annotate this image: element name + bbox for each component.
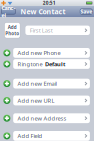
staticText: Add new URL: [18, 97, 55, 104]
staticText: Default: [45, 60, 65, 68]
staticText: Save: [80, 8, 92, 15]
button[interactable]: Cancel: [1, 9, 15, 14]
staticText: Add new Phone: [18, 49, 61, 57]
button[interactable]: Ringtone: [13, 59, 90, 69]
staticText: Photo: [5, 30, 19, 36]
staticText: First Last: [30, 26, 53, 34]
button[interactable]: First Last: [25, 26, 90, 35]
button[interactable]: Add: [4, 22, 20, 38]
button[interactable]: Add new Phone: [13, 48, 90, 58]
button[interactable]: Add new Address: [13, 113, 90, 123]
button[interactable]: Add new Email: [13, 79, 90, 88]
staticText: 20:51: [43, 0, 56, 6]
button[interactable]: Add Field: [13, 131, 90, 141]
staticText: Add: [8, 24, 17, 30]
staticText: Cancel: [1, 4, 15, 19]
staticText: New Contact: [20, 7, 65, 16]
staticText: Ringtone: [18, 60, 43, 68]
staticText: Add new Email: [18, 80, 57, 87]
staticText: Add Field: [18, 132, 43, 140]
button[interactable]: Add new URL: [13, 96, 90, 105]
staticText: Add new Address: [18, 114, 67, 122]
button[interactable]: Save: [80, 9, 92, 14]
